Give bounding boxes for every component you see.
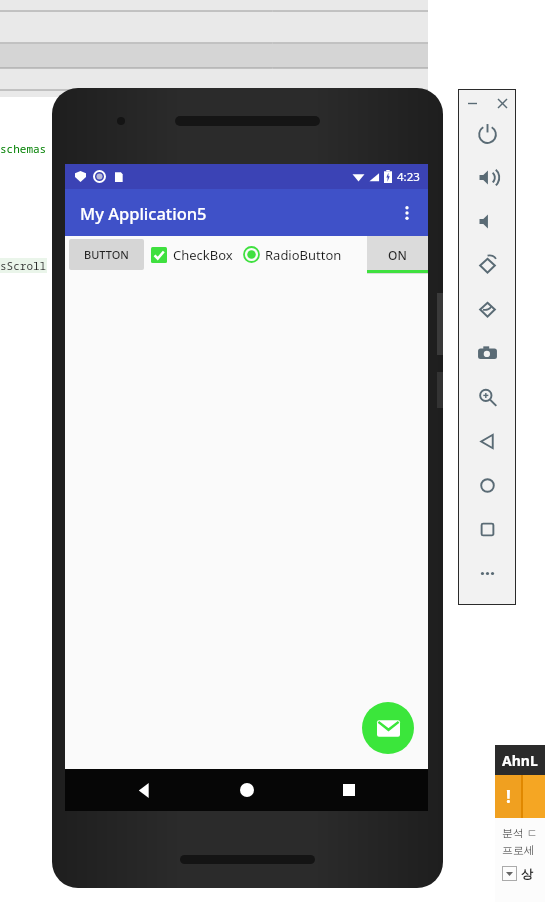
- staticText: AhnL: [502, 751, 538, 770]
- button[interactable]: Rotate left: [465, 243, 509, 287]
- button[interactable]: Back: [465, 419, 509, 463]
- button[interactable]: Home: [465, 463, 509, 507]
- button[interactable]: BUTTON: [69, 239, 144, 270]
- staticText: My Application5: [80, 202, 207, 224]
- button[interactable]: CheckBox: [151, 239, 233, 270]
- button[interactable]: Overview: [465, 507, 509, 551]
- button[interactable]: ON: [367, 236, 428, 274]
- staticText: 4:23: [397, 169, 420, 185]
- staticText: CheckBox: [173, 246, 233, 264]
- button[interactable]: Expand: [502, 866, 517, 881]
- staticText: 분석 ㄷ: [502, 825, 538, 840]
- button[interactable]: Close: [493, 94, 511, 112]
- button[interactable]: Power: [465, 111, 509, 155]
- button[interactable]: Minimize: [463, 94, 481, 112]
- button[interactable]: More: [465, 551, 509, 595]
- staticText: schemas: [0, 141, 47, 156]
- staticText: ON: [388, 247, 407, 263]
- button[interactable]: Back: [121, 769, 167, 811]
- staticText: !: [506, 785, 511, 808]
- button[interactable]: Volume up: [465, 155, 509, 199]
- button[interactable]: Rotate right: [465, 287, 509, 331]
- button[interactable]: RadioButton: [243, 239, 342, 270]
- button[interactable]: Recents: [326, 769, 372, 811]
- staticText: sScroll: [0, 258, 47, 273]
- staticText: 프로세: [502, 843, 535, 857]
- staticText: RadioButton: [265, 246, 342, 264]
- button[interactable]: Volume down: [465, 199, 509, 243]
- button[interactable]: More options: [386, 192, 428, 234]
- button[interactable]: Dropdown: [395, 238, 421, 264]
- button[interactable]: Zoom: [465, 375, 509, 419]
- staticText: BUTTON: [84, 247, 129, 262]
- staticText: 상: [521, 866, 533, 881]
- button[interactable]: Screenshot: [465, 331, 509, 375]
- button[interactable]: Home: [224, 769, 270, 811]
- button[interactable]: Compose email: [362, 702, 414, 754]
